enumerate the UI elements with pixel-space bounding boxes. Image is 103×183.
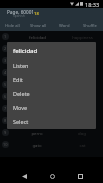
button[interactable]: Recents xyxy=(71,167,89,183)
staticText: Hide all xyxy=(5,23,20,29)
staticText: 1 xyxy=(4,34,7,39)
button[interactable]: Hide all xyxy=(0,19,25,31)
button[interactable]: 4 xyxy=(0,67,103,79)
button[interactable]: Shuffle xyxy=(77,19,103,31)
button[interactable]: Home xyxy=(43,167,61,183)
staticText: 4 xyxy=(4,70,7,75)
staticText: Listen xyxy=(13,62,29,69)
button[interactable]: 10 xyxy=(0,139,103,151)
button[interactable]: 8 xyxy=(0,115,103,127)
button[interactable]: Select xyxy=(7,114,96,128)
staticText: 18 xyxy=(34,11,39,17)
staticText: Edit xyxy=(13,76,23,83)
staticText: 2 xyxy=(4,46,7,51)
button[interactable]: 1 xyxy=(0,31,103,43)
button[interactable]: 5 xyxy=(0,79,103,91)
button[interactable]: Delete xyxy=(7,86,96,100)
staticText: Delete xyxy=(13,90,30,97)
staticText: cat xyxy=(79,142,86,148)
staticText: gato xyxy=(32,142,42,148)
staticText: felicidad xyxy=(29,34,46,40)
button[interactable]: 3 xyxy=(0,55,103,67)
staticText: 7 xyxy=(4,106,7,111)
button[interactable]: 9 xyxy=(0,127,103,139)
button[interactable]: felicidad xyxy=(7,44,96,58)
button[interactable]: Move xyxy=(7,100,96,114)
button[interactable]: Listen xyxy=(7,58,96,72)
staticText: Spanish xyxy=(13,14,25,18)
button[interactable]: 2 xyxy=(0,43,103,55)
staticText: 10 xyxy=(3,142,8,147)
staticText: 3 xyxy=(4,58,7,63)
staticText: Show all xyxy=(30,23,47,29)
button[interactable]: 7 xyxy=(0,103,103,115)
staticText: Word xyxy=(59,23,70,29)
staticText: 6 xyxy=(4,94,7,99)
button[interactable]: Word xyxy=(51,19,77,31)
button[interactable]: 6 xyxy=(0,91,103,103)
staticText: Move xyxy=(13,104,28,111)
staticText: dog xyxy=(78,130,86,136)
staticText: Select xyxy=(13,118,29,125)
staticText: tristeza xyxy=(30,46,45,52)
staticText: 8 xyxy=(4,118,7,123)
button[interactable]: Back xyxy=(15,167,33,183)
button[interactable]: Edit xyxy=(7,72,96,86)
staticText: Shuffle xyxy=(83,23,97,29)
staticText: felicidad xyxy=(13,47,38,55)
staticText: 9 xyxy=(4,130,7,135)
staticText: Page, 60001 xyxy=(7,9,35,15)
staticText: 18:33 xyxy=(85,1,100,8)
staticText: 5 xyxy=(4,82,7,87)
staticText: perro xyxy=(31,130,43,136)
staticText: happiness xyxy=(72,34,93,40)
button[interactable]: Show all xyxy=(25,19,51,31)
